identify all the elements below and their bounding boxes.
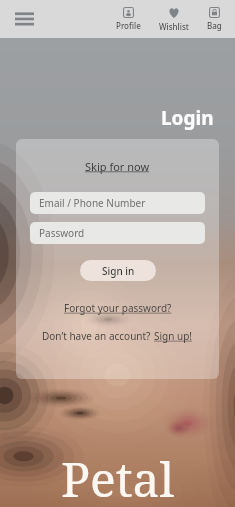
staticText: Skip for now [85,159,150,174]
button[interactable]: Wishlist [156,5,192,34]
button[interactable]: Sign in [80,260,156,281]
button[interactable]: Bag [204,5,225,33]
button[interactable]: Menu [10,5,38,33]
staticText: Email / Phone Number [39,196,146,210]
button[interactable]: Forgot your password? [58,299,178,317]
staticText: Password [39,226,85,240]
button[interactable]: Skip for now [79,157,156,176]
staticText: Forgot your password? [64,301,172,315]
staticText: Don’t have an account? [42,329,154,343]
staticText: Profile [116,20,141,31]
staticText: Bag [207,20,222,31]
button[interactable]: Email / Phone Number [30,192,205,214]
button[interactable]: Password [30,222,205,244]
button[interactable]: Profile [113,5,144,33]
button[interactable]: Sign up! [154,329,193,343]
staticText: Login [161,105,214,131]
staticText: Petal [61,446,175,507]
staticText: Sign in [102,264,135,278]
staticText: Wishlist [159,21,189,32]
staticText: Sign up! [154,329,193,343]
